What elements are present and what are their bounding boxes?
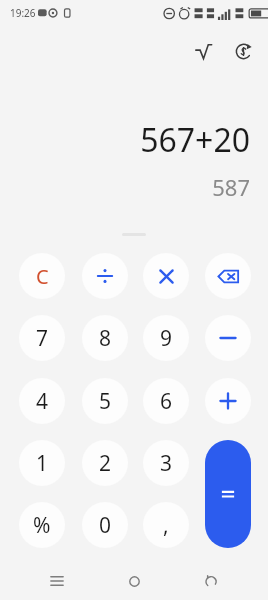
button[interactable]: %: [19, 502, 65, 548]
button[interactable]: C: [19, 253, 65, 299]
button[interactable]: Recent apps: [37, 562, 77, 600]
button[interactable]: Minus: [205, 315, 251, 361]
staticText: ,: [163, 511, 169, 540]
staticText: 9: [160, 324, 173, 353]
button[interactable]: Equals: [205, 440, 251, 548]
button[interactable]: Divide: [82, 253, 128, 299]
button[interactable]: 7: [19, 315, 65, 361]
button[interactable]: 5: [82, 378, 128, 424]
button[interactable]: Currency converter: [226, 34, 260, 68]
button[interactable]: Back: [191, 562, 231, 600]
staticText: 3: [160, 449, 173, 478]
button[interactable]: 9: [143, 315, 189, 361]
staticText: 8: [99, 324, 112, 353]
button[interactable]: Plus: [205, 378, 251, 424]
staticText: 2: [99, 449, 112, 478]
staticText: 587: [212, 172, 250, 202]
button[interactable]: 1: [19, 440, 65, 486]
button[interactable]: ,: [143, 502, 189, 548]
button[interactable]: Scientific mode: [186, 34, 220, 68]
staticText: 7: [36, 324, 49, 353]
staticText: 0: [99, 511, 112, 540]
staticText: 567+20: [140, 118, 250, 162]
button[interactable]: 2: [82, 440, 128, 486]
button[interactable]: 4: [19, 378, 65, 424]
staticText: 6: [160, 387, 173, 416]
button[interactable]: 0: [82, 502, 128, 548]
staticText: 19:26: [10, 6, 36, 20]
staticText: 1: [36, 449, 49, 478]
button[interactable]: Home: [114, 562, 154, 600]
staticText: C: [36, 263, 49, 290]
staticText: %: [33, 511, 51, 540]
button[interactable]: Backspace: [205, 253, 251, 299]
button[interactable]: 6: [143, 378, 189, 424]
staticText: 5: [99, 387, 112, 416]
staticText: 4: [36, 387, 49, 416]
button[interactable]: Multiply: [143, 253, 189, 299]
button[interactable]: 3: [143, 440, 189, 486]
button[interactable]: 8: [82, 315, 128, 361]
